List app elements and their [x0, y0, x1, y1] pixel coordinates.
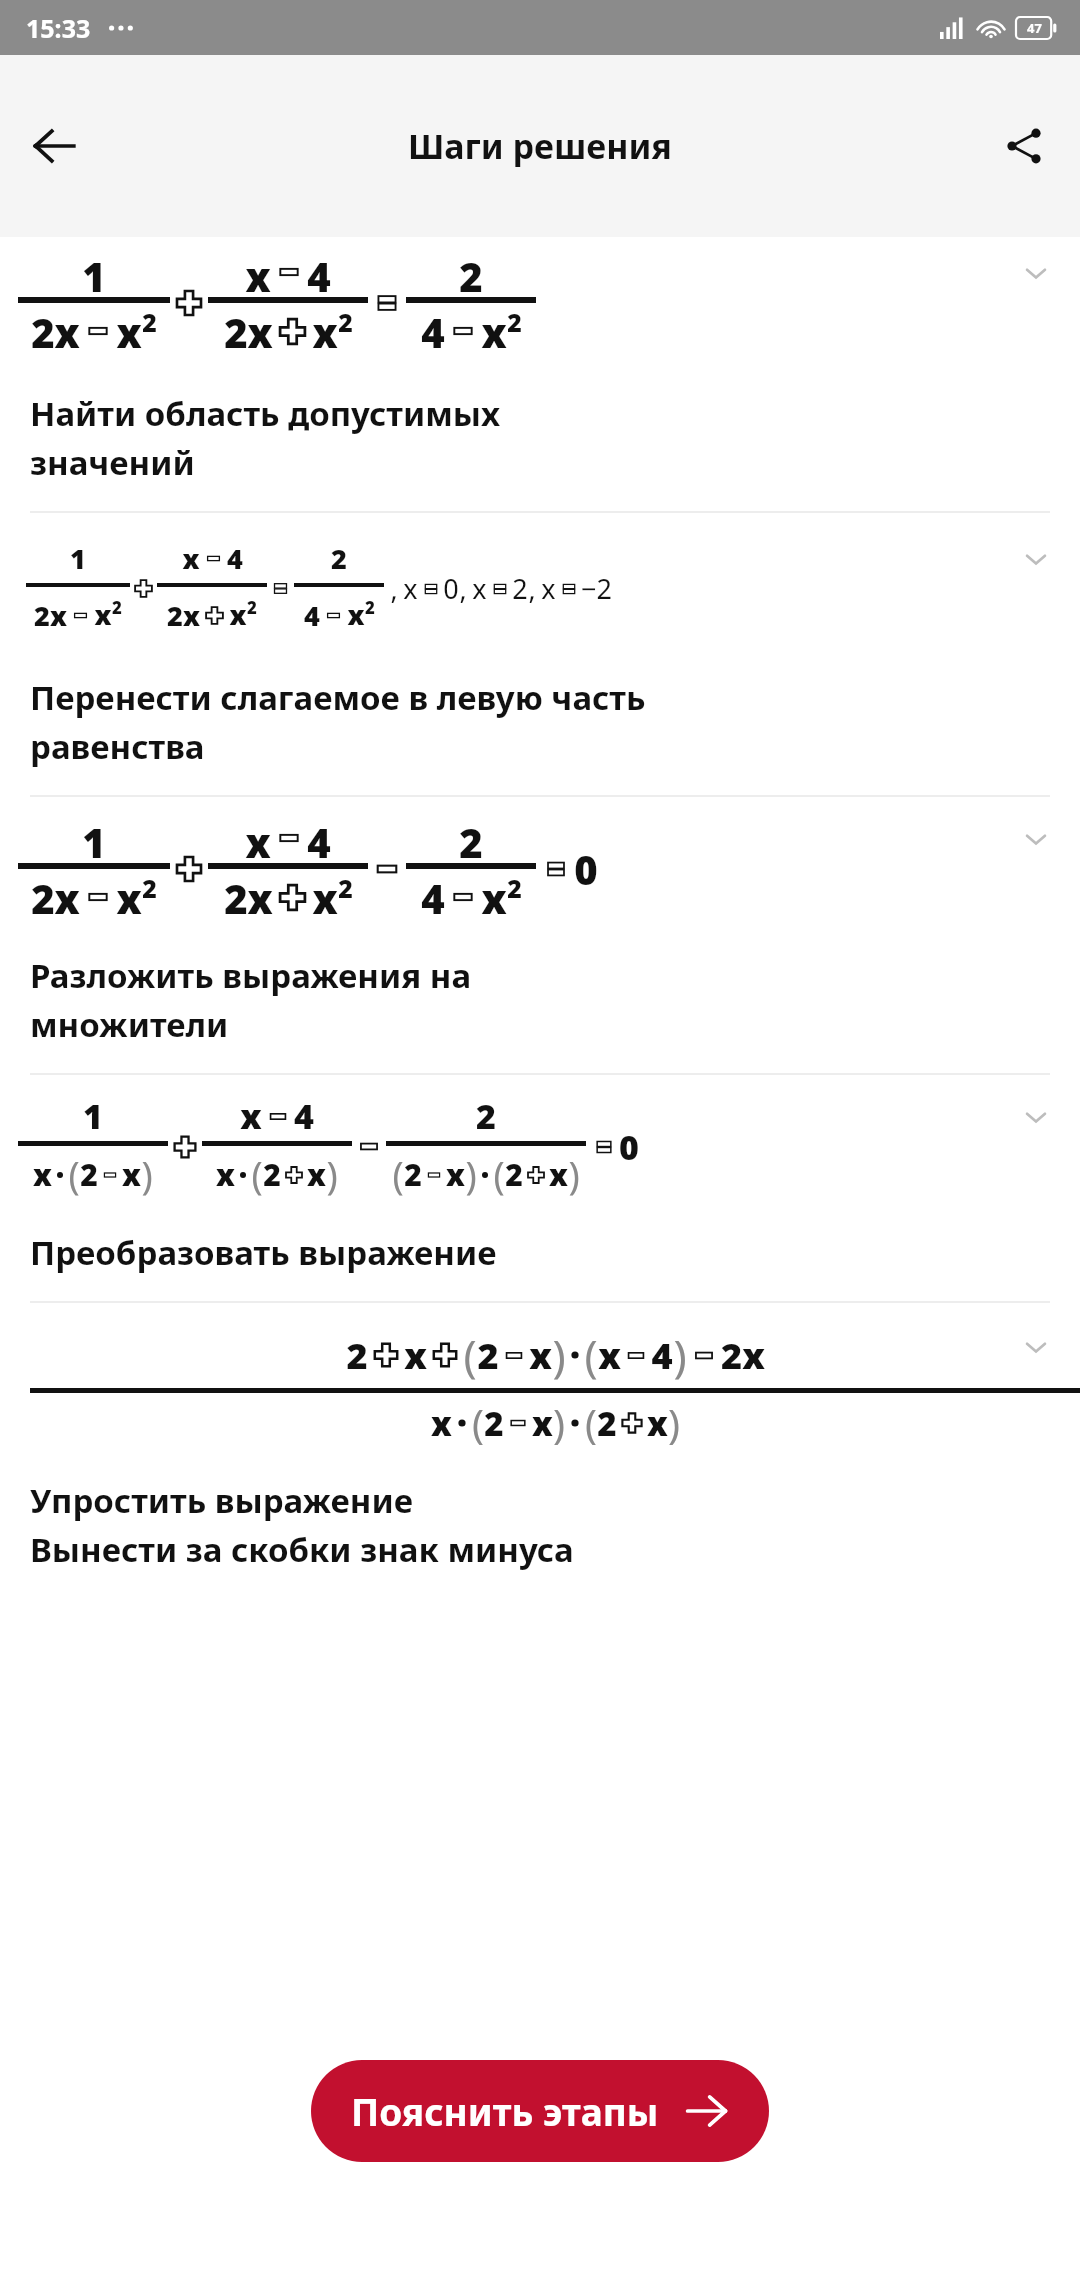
staticText: равенства	[30, 724, 205, 769]
staticText: 0	[443, 570, 459, 607]
button[interactable]: 1	[0, 797, 1080, 1075]
staticText: ,	[528, 570, 536, 607]
button[interactable]: 1	[0, 1075, 1080, 1303]
staticText: Шаги решения	[408, 123, 672, 169]
staticText: 2	[477, 1331, 499, 1380]
staticText: x	[431, 1401, 452, 1446]
staticText: x	[347, 596, 365, 633]
staticText: Перенести слагаемое в левую часть	[30, 675, 646, 720]
staticText: 2x	[224, 871, 273, 923]
staticText: 2	[263, 1154, 281, 1195]
staticText: )	[553, 1396, 565, 1450]
staticText: множители	[30, 1002, 229, 1047]
staticText: 0	[574, 842, 598, 896]
staticText: 4	[421, 871, 445, 923]
staticText: x	[182, 540, 200, 577]
staticText: x	[541, 570, 556, 607]
staticText: 2	[338, 871, 353, 901]
staticText: )	[465, 1149, 477, 1200]
staticText: Найти область допустимых	[30, 391, 501, 436]
staticText: x	[481, 305, 507, 357]
staticText: x	[312, 305, 338, 357]
button[interactable]: Развернуть	[1014, 537, 1058, 581]
staticText: (	[251, 1149, 263, 1200]
staticText: 2	[80, 1154, 98, 1195]
staticText: )	[668, 1396, 680, 1450]
staticText: 2	[338, 305, 353, 335]
staticText: x	[94, 596, 112, 633]
staticText: ,	[390, 570, 398, 607]
staticText: 2	[459, 815, 483, 861]
staticText: x	[245, 815, 271, 861]
staticText: 2	[247, 596, 257, 619]
staticText: Разложить выражения на	[30, 953, 472, 998]
staticText: )	[552, 1325, 566, 1385]
staticText: 2x	[31, 305, 80, 357]
staticText: 2	[112, 596, 122, 619]
staticText: x	[403, 570, 418, 607]
staticText: 2	[404, 1154, 422, 1195]
staticText: x	[598, 1331, 621, 1380]
staticText: 1	[70, 540, 86, 577]
staticText: x	[472, 570, 487, 607]
staticText: x	[229, 596, 247, 633]
staticText: (	[585, 1396, 597, 1450]
staticText: 2	[597, 1401, 617, 1446]
button[interactable]: Развернуть	[1014, 817, 1058, 861]
staticText: 4	[294, 1093, 314, 1139]
staticText: (	[463, 1325, 477, 1385]
staticText: 2	[142, 871, 157, 901]
button[interactable]: Поделиться	[984, 106, 1064, 186]
button[interactable]: 2	[0, 1303, 1080, 1598]
staticText: (	[472, 1396, 484, 1450]
staticText: 1	[82, 815, 106, 861]
button[interactable]: Пояснить этапы	[311, 2060, 769, 2162]
staticText: 0	[619, 1124, 639, 1170]
staticText: (	[392, 1149, 404, 1200]
button[interactable]: Развернуть	[1014, 251, 1058, 295]
staticText: 1	[82, 249, 106, 295]
button[interactable]: 1	[0, 513, 1080, 797]
staticText: 2	[331, 540, 347, 577]
staticText: 2x	[167, 597, 200, 634]
button[interactable]: Развернуть	[1014, 1095, 1058, 1139]
staticText: (	[493, 1149, 505, 1200]
staticText: )	[568, 1149, 580, 1200]
staticText: x	[446, 1154, 465, 1195]
staticText: 4	[421, 305, 445, 357]
staticText: 4	[304, 597, 320, 634]
staticText: x	[240, 1093, 262, 1139]
staticText: 2x	[34, 597, 67, 634]
button[interactable]: Развернуть	[1014, 1325, 1058, 1369]
staticText: )	[673, 1325, 687, 1385]
staticText: 47	[1027, 19, 1042, 37]
button[interactable]: 1	[0, 237, 1080, 513]
staticText: x	[404, 1331, 427, 1380]
staticText: 2	[505, 1154, 523, 1195]
staticText: )	[326, 1149, 338, 1200]
staticText: 2	[507, 871, 522, 901]
staticText: 2x	[224, 305, 273, 357]
staticText: 4	[307, 815, 331, 861]
staticText: ,	[459, 570, 467, 607]
staticText: 2x	[31, 871, 80, 923]
staticText: 2	[346, 1331, 368, 1380]
staticText: (	[68, 1149, 80, 1200]
staticText: 2	[484, 1401, 504, 1446]
staticText: 2	[476, 1093, 496, 1139]
button[interactable]: Назад	[14, 106, 94, 186]
staticText: x	[116, 305, 142, 357]
staticText: x	[122, 1154, 141, 1195]
staticText: 15:33	[26, 11, 91, 45]
staticText: Преобразовать выражение	[30, 1230, 497, 1275]
staticText: 2x	[721, 1331, 765, 1380]
staticText: 2	[507, 305, 522, 335]
staticText: значений	[30, 440, 195, 485]
staticText: (	[584, 1325, 598, 1385]
staticText: Пояснить этапы	[351, 2086, 659, 2136]
staticText: 2	[365, 596, 375, 619]
staticText: 1	[83, 1093, 103, 1139]
staticText: x	[647, 1401, 668, 1446]
staticText: x	[33, 1154, 52, 1195]
staticText: x	[529, 1331, 552, 1380]
